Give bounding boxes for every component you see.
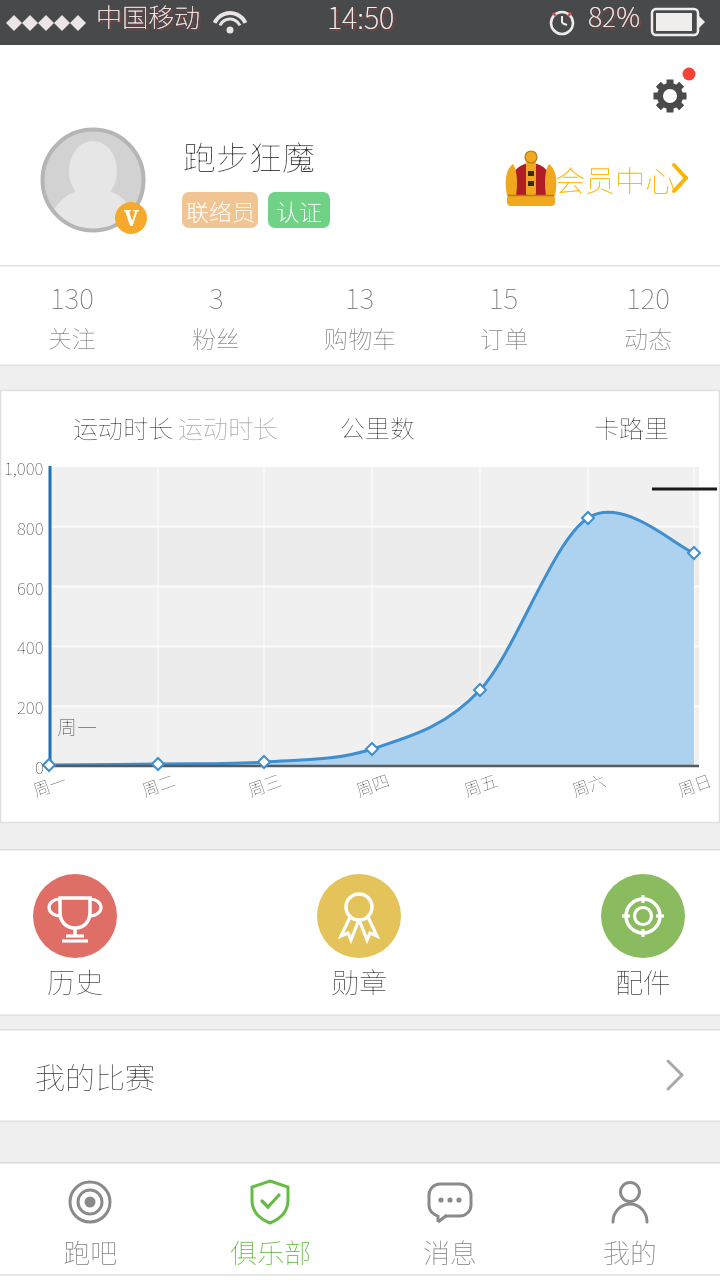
- staticText: 14:50: [327, 0, 395, 37]
- staticText: 配件: [615, 961, 672, 1002]
- staticText: 关注: [48, 320, 96, 355]
- staticText: 周一: [57, 712, 97, 741]
- staticText: 动态: [624, 320, 672, 355]
- button[interactable]: 消息: [360, 1162, 540, 1280]
- button[interactable]: 15: [432, 265, 576, 366]
- staticText: 200: [17, 694, 44, 719]
- button[interactable]: 卡路里: [562, 402, 702, 452]
- staticText: 公里数: [340, 409, 416, 445]
- staticText: 周五: [460, 767, 500, 802]
- staticText: 周日: [674, 767, 714, 802]
- staticText: 会员中心: [555, 157, 675, 200]
- staticText: 我的: [603, 1232, 657, 1271]
- button[interactable]: 会员中心: [498, 145, 698, 211]
- staticText: 跑吧: [63, 1232, 117, 1271]
- button[interactable]: 3: [144, 265, 288, 366]
- button[interactable]: 我的: [540, 1162, 720, 1280]
- button[interactable]: 认证: [268, 192, 330, 228]
- staticText: 我的比赛: [35, 1054, 155, 1097]
- button[interactable]: 13: [288, 265, 432, 366]
- staticText: 周六: [568, 767, 608, 802]
- staticText: 400: [17, 634, 44, 659]
- staticText: 周二: [138, 767, 178, 802]
- staticText: 俱乐部: [230, 1232, 311, 1271]
- staticText: 13: [345, 277, 375, 318]
- staticText: 卡路里: [594, 409, 670, 445]
- staticText: 周三: [244, 767, 284, 802]
- staticText: 运动时长: [73, 409, 174, 445]
- button[interactable]: V: [41, 128, 145, 232]
- button[interactable]: [644, 66, 704, 126]
- button[interactable]: 120: [576, 265, 720, 366]
- staticText: 联络员: [186, 194, 255, 227]
- button[interactable]: 历史: [33, 874, 117, 984]
- staticText: 120: [626, 277, 670, 318]
- staticText: 3: [209, 277, 224, 318]
- staticText: 购物车: [324, 320, 396, 355]
- button[interactable]: 配件: [601, 874, 685, 984]
- button[interactable]: 我的比赛: [0, 1029, 720, 1122]
- staticText: 15: [489, 277, 519, 318]
- staticText: 600: [17, 575, 44, 600]
- staticText: 中国移动: [96, 0, 201, 35]
- staticText: 运动时长: [178, 409, 279, 445]
- staticText: 粉丝: [192, 320, 240, 355]
- button[interactable]: 运动时长: [158, 402, 298, 452]
- button[interactable]: 俱乐部: [180, 1162, 360, 1280]
- staticText: 周一: [29, 767, 69, 802]
- staticText: 周四: [352, 767, 392, 802]
- staticText: 800: [17, 515, 44, 540]
- button[interactable]: 130: [0, 265, 144, 366]
- button[interactable]: 联络员: [182, 192, 258, 228]
- staticText: 认证: [276, 194, 322, 227]
- button[interactable]: 勋章: [317, 874, 401, 984]
- staticText: 订单: [480, 320, 528, 355]
- staticText: 历史: [47, 961, 104, 1002]
- button[interactable]: 运动时长: [53, 402, 193, 452]
- staticText: 130: [50, 277, 94, 318]
- staticText: V: [124, 204, 139, 233]
- staticText: 1,000: [4, 455, 44, 480]
- staticText: 0: [35, 754, 44, 779]
- button[interactable]: 公里数: [308, 402, 448, 452]
- button[interactable]: 跑吧: [0, 1162, 180, 1280]
- staticText: 消息: [423, 1232, 477, 1271]
- staticText: 82%: [588, 0, 640, 35]
- staticText: 勋章: [331, 961, 388, 1002]
- staticText: 跑步狂魔: [183, 132, 315, 180]
